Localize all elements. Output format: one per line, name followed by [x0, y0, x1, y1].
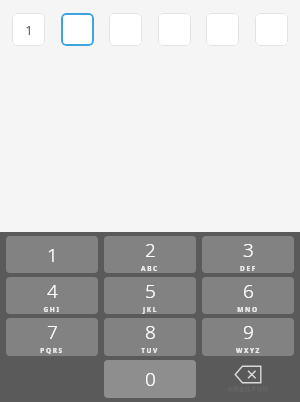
staticText: 3 — [243, 237, 254, 263]
staticText: 7 — [47, 319, 58, 345]
staticText: TUV — [141, 346, 159, 355]
button[interactable]: 7 — [6, 318, 98, 356]
staticText: 9 — [243, 319, 254, 345]
button[interactable]: 0 — [104, 360, 196, 398]
staticText: 1 — [47, 242, 58, 268]
button[interactable]: 1 — [12, 13, 45, 46]
staticText: MNO — [237, 305, 259, 314]
button[interactable]: Backspace — [199, 358, 297, 400]
button[interactable] — [255, 13, 288, 46]
button[interactable]: 5 — [104, 277, 196, 314]
staticText: PQRS — [40, 346, 64, 355]
button[interactable]: 8 — [104, 318, 196, 356]
staticText: WXYZ — [236, 346, 261, 355]
staticText: 2 — [145, 237, 156, 263]
button[interactable]: 4 — [6, 277, 98, 314]
staticText: GHI — [43, 305, 61, 314]
button[interactable]: 6 — [202, 277, 294, 314]
staticText: 6 — [243, 278, 254, 304]
button[interactable]: 3 — [202, 236, 294, 273]
button[interactable]: 1 — [6, 236, 98, 273]
staticText: ABC — [141, 264, 159, 273]
staticText: @掘金技术社区 — [227, 385, 269, 393]
button[interactable]: 9 — [202, 318, 294, 356]
staticText: DEF — [240, 264, 257, 273]
button[interactable] — [109, 13, 142, 46]
staticText: 8 — [145, 319, 156, 345]
staticText: 5 — [145, 278, 156, 304]
button[interactable] — [158, 13, 191, 46]
staticText: JKL — [143, 305, 158, 314]
staticText: 4 — [47, 278, 58, 304]
staticText: 1 — [25, 21, 33, 39]
staticText: 0 — [145, 366, 156, 392]
button[interactable]: 2 — [104, 236, 196, 273]
button[interactable] — [61, 13, 94, 46]
button[interactable] — [206, 13, 239, 46]
